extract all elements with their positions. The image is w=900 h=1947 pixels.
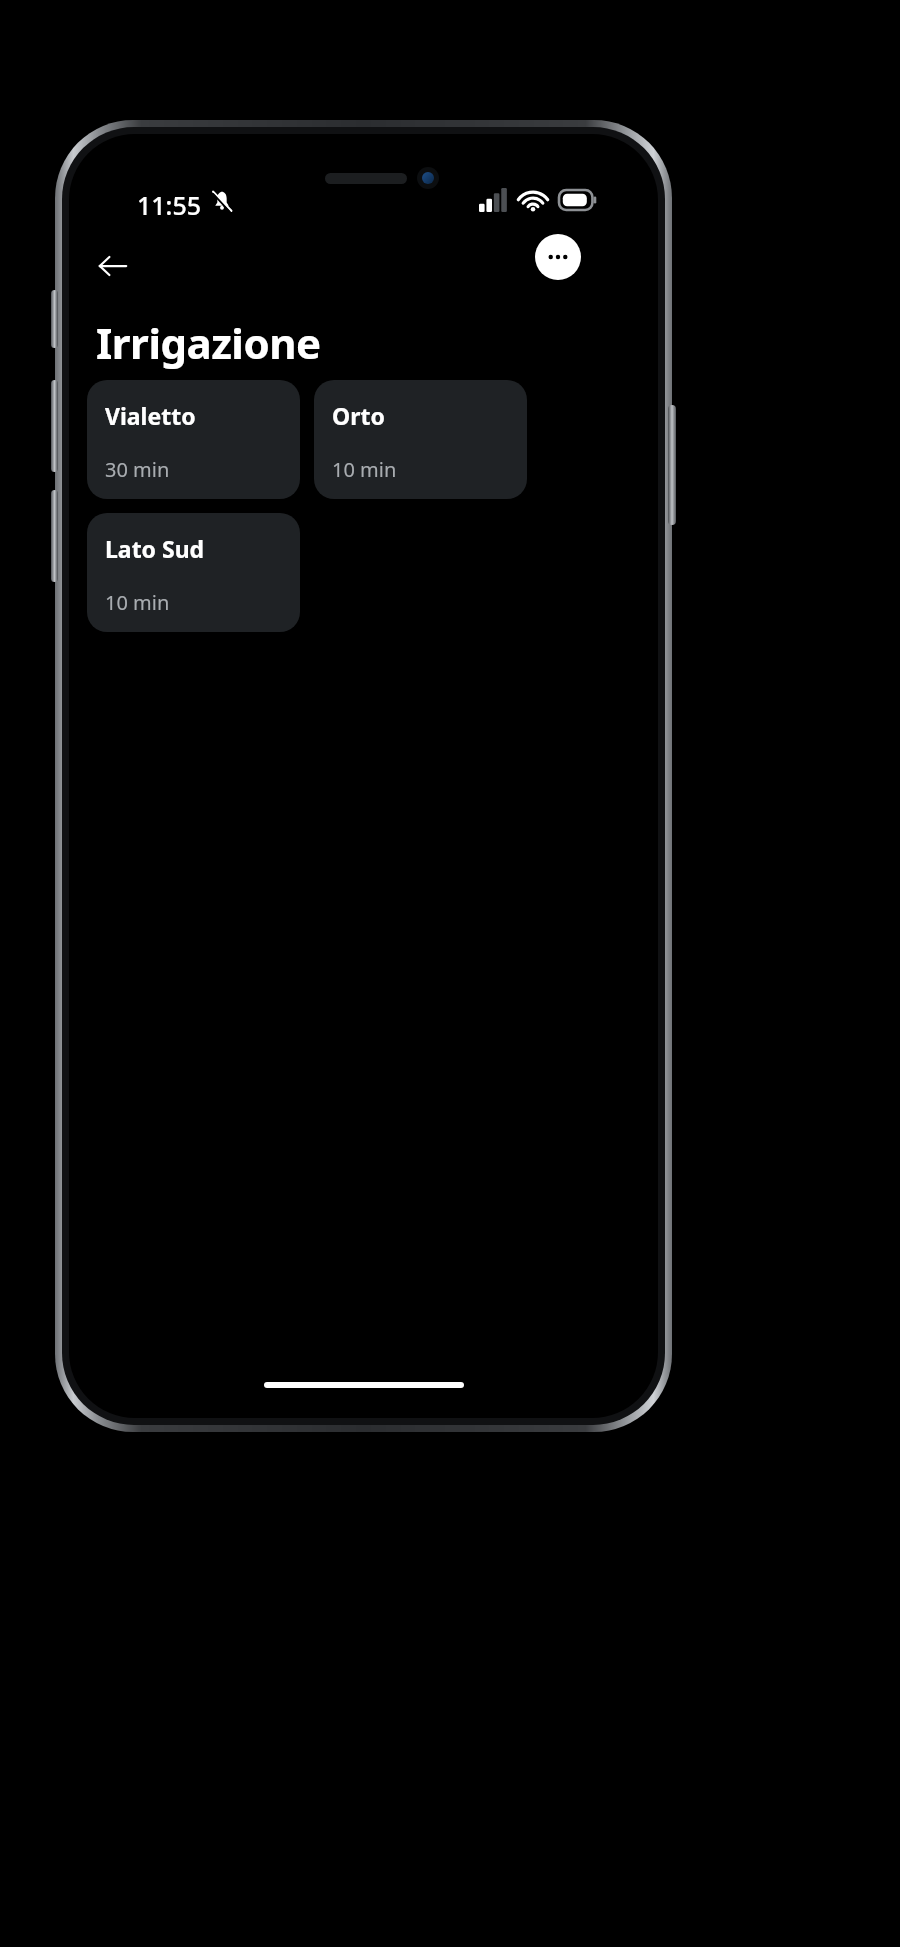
staticText: 30 min	[105, 456, 170, 483]
staticText: 10 min	[332, 456, 397, 483]
staticText: 11:55	[137, 188, 202, 222]
button[interactable]: More options	[535, 234, 581, 280]
staticText: 10 min	[105, 589, 170, 616]
staticText: Irrigazione	[96, 314, 321, 371]
button[interactable]: Lato Sud	[87, 513, 300, 632]
staticText: Orto	[332, 400, 385, 431]
button[interactable]: Orto	[314, 380, 527, 499]
button[interactable]: Vialetto	[87, 380, 300, 499]
staticText: Vialetto	[105, 400, 196, 431]
button[interactable]: Back	[87, 240, 139, 292]
staticText: Lato Sud	[105, 533, 205, 564]
